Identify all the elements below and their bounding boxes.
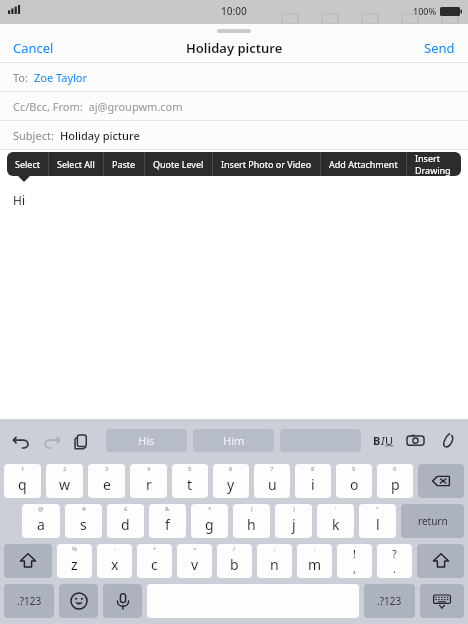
button[interactable]: + [137,544,172,578]
staticText: Cc/Bcc, From: aj@groupwm.com [13,99,183,114]
button[interactable]: Camera [404,429,426,451]
staticText: ( [251,505,253,513]
button[interactable]: ? [377,544,412,578]
button[interactable]: 5 [172,464,208,498]
button[interactable]: 1 [4,464,41,498]
staticText: Subject: [13,128,60,143]
staticText: d [121,515,130,534]
button[interactable]: Send [416,35,468,61]
button[interactable]: 6 [213,464,249,498]
staticText: B [373,433,381,448]
button[interactable]: - [97,544,132,578]
button[interactable]: .?123 [364,584,415,618]
button[interactable]: Quote Level [145,152,212,176]
button[interactable]: Paste [104,152,144,176]
button[interactable]: Select [7,152,48,176]
button[interactable]: 7 [254,464,290,498]
staticText: Add Attachment [329,158,398,170]
staticText: 0 [393,465,397,473]
staticText: Select All [57,158,95,170]
staticText: k [332,515,340,534]
button[interactable]: .?123 [4,584,54,618]
button[interactable]: Subject: [0,121,468,149]
staticText: return [418,514,448,528]
button[interactable]: 9 [336,464,372,498]
staticText: : [314,545,316,553]
button[interactable]: Backspace [418,464,464,498]
button[interactable]: Cancel [0,35,62,61]
staticText: Holiday picture [186,39,283,57]
button[interactable]: Shift [417,544,464,578]
button[interactable]: Emoji [59,584,98,618]
staticText: 100% [413,5,437,17]
staticText: 7 [270,465,274,473]
button[interactable]: Cc/Bcc, From: aj@groupwm.com [0,92,468,120]
staticText: m [308,555,322,574]
button[interactable]: Shift [4,544,52,578]
staticText: t [187,475,193,494]
button[interactable]: 3 [88,464,125,498]
staticText: y [227,475,235,494]
button[interactable]: Redo [40,429,62,451]
button[interactable]: £ [107,504,144,538]
button[interactable]: # [65,504,102,538]
button[interactable]: & [149,504,186,538]
staticText: 10:00 [221,4,247,18]
staticText: Insert Drawing [415,152,453,176]
staticText: = [193,545,197,553]
button[interactable]: Insert Photo or Video [213,152,320,176]
staticText: 9 [352,465,356,473]
staticText: ) [293,505,295,513]
button[interactable]: ; [257,544,292,578]
button[interactable]: 2 [46,464,83,498]
button[interactable]: / [217,544,252,578]
staticText: , [353,561,356,576]
button[interactable]: 0 [377,464,413,498]
staticText: .?123 [17,594,42,608]
staticText: / [233,545,236,553]
staticText: j [292,515,296,534]
staticText: u [268,475,277,494]
staticText: His [138,433,155,448]
button[interactable]: Attach [436,429,458,451]
button[interactable]: @ [22,504,60,538]
button[interactable]: ( [233,504,270,538]
button[interactable]: Dictation [103,584,142,618]
button[interactable]: To: [0,63,468,91]
button[interactable]: Hide keyboard [420,584,464,618]
button[interactable]: ' [317,504,354,538]
button[interactable]: Format [373,433,394,448]
staticText: £ [124,505,128,513]
staticText: s [80,515,87,534]
button[interactable]: His [106,429,187,452]
staticText: ? [392,546,397,561]
staticText: a [37,515,45,534]
button[interactable]: Copy [70,429,92,451]
staticText: 3 [105,465,109,473]
button[interactable]: * [191,504,228,538]
staticText: " [376,505,379,513]
button[interactable]: : [297,544,332,578]
staticText: g [205,515,214,534]
button[interactable]: = [177,544,212,578]
staticText: Holiday picture [60,128,140,143]
button[interactable]: ! [337,544,372,578]
button[interactable]: Add Attachment [321,152,406,176]
staticText: 8 [311,465,315,473]
staticText: n [270,555,279,574]
button[interactable]: Insert Drawing [407,152,461,176]
staticText: v [191,555,199,574]
button[interactable]: ) [275,504,312,538]
button[interactable]: Undo [10,429,32,451]
button[interactable]: Him [193,429,274,452]
button[interactable]: " [359,504,396,538]
button[interactable]: 4 [130,464,167,498]
button[interactable]: % [57,544,92,578]
staticText: Select [15,158,40,170]
button[interactable]: Select All [49,152,103,176]
button[interactable]: return [401,504,464,538]
button[interactable]: 8 [295,464,331,498]
staticText: To: [13,70,34,85]
